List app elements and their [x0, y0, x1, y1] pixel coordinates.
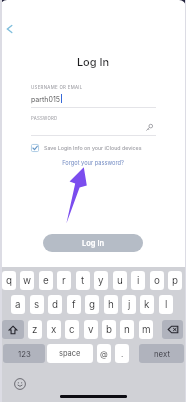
button[interactable]: Emoji keyboard	[14, 378, 26, 390]
staticText: Log In	[82, 239, 105, 248]
button[interactable]: @	[97, 344, 111, 363]
button[interactable]: c	[65, 320, 79, 339]
staticText: y	[98, 275, 104, 287]
button[interactable]: h	[104, 295, 118, 314]
button[interactable]: x	[47, 320, 61, 339]
button[interactable]: f	[67, 295, 81, 314]
button[interactable]: v	[84, 320, 98, 339]
button[interactable]: space	[47, 344, 93, 363]
staticText: 123	[18, 349, 31, 358]
staticText: e	[43, 275, 49, 287]
button[interactable]: next	[139, 344, 184, 363]
staticText: h	[108, 299, 114, 311]
staticText: z	[32, 324, 38, 336]
staticText: d	[52, 299, 58, 311]
staticText: space	[59, 349, 81, 358]
button[interactable]: q	[2, 271, 16, 290]
staticText: PASSWORD	[31, 116, 58, 121]
button[interactable]: j	[122, 295, 136, 314]
staticText: g	[89, 299, 96, 311]
button[interactable]: Shift	[2, 320, 24, 339]
staticText: a	[15, 299, 21, 311]
staticText: f	[72, 299, 76, 311]
button[interactable]: Backspace	[162, 320, 183, 339]
button[interactable]: g	[85, 295, 99, 314]
staticText: next	[154, 349, 170, 358]
staticText: u	[117, 275, 123, 287]
staticText: x	[51, 324, 57, 336]
button[interactable]: d	[48, 295, 62, 314]
button[interactable]: Forgot your password?	[0, 159, 186, 166]
button[interactable]: p	[168, 271, 182, 290]
staticText: v	[88, 324, 94, 336]
staticText: s	[34, 299, 40, 311]
staticText: Save Login Info on your iCloud devices	[44, 145, 142, 151]
staticText: p	[172, 275, 178, 287]
staticText: i	[137, 275, 140, 287]
staticText: c	[69, 324, 75, 336]
button[interactable]: w	[20, 271, 34, 290]
staticText: k	[144, 299, 150, 311]
staticText: parth015	[31, 95, 60, 103]
button[interactable]: k	[140, 295, 154, 314]
staticText: t	[81, 275, 85, 287]
button[interactable]: z	[28, 320, 42, 339]
staticText: @	[100, 349, 108, 359]
staticText: q	[6, 275, 12, 287]
button[interactable]: s	[30, 295, 44, 314]
staticText: r	[62, 275, 66, 287]
button[interactable]: u	[113, 271, 127, 290]
staticText: w	[23, 275, 32, 287]
button[interactable]: Log In	[43, 234, 143, 252]
button[interactable]: 123	[3, 344, 45, 363]
staticText: .	[121, 349, 124, 359]
staticText: m	[142, 324, 151, 336]
staticText: o	[154, 275, 160, 287]
button[interactable]: .	[115, 344, 129, 363]
button[interactable]: i	[131, 271, 145, 290]
staticText: USERNAME OR EMAIL	[31, 85, 83, 90]
button[interactable]: b	[102, 320, 116, 339]
button[interactable]: a	[11, 295, 25, 314]
staticText: j	[128, 299, 131, 311]
staticText: b	[106, 324, 112, 336]
button[interactable]: y	[94, 271, 108, 290]
button[interactable]: Back	[1, 21, 17, 37]
button[interactable]: n	[120, 320, 134, 339]
button[interactable]: l	[159, 295, 173, 314]
staticText: Log In	[0, 55, 186, 68]
staticText: n	[124, 324, 130, 336]
staticText: l	[165, 299, 168, 311]
button[interactable]: r	[57, 271, 71, 290]
button[interactable]: e	[39, 271, 53, 290]
button[interactable]: t	[76, 271, 90, 290]
button[interactable]: m	[139, 320, 153, 339]
button[interactable]: Save Login Info on your iCloud devices	[31, 142, 142, 153]
button[interactable]: o	[150, 271, 164, 290]
button[interactable]: Autofill password	[144, 122, 155, 133]
